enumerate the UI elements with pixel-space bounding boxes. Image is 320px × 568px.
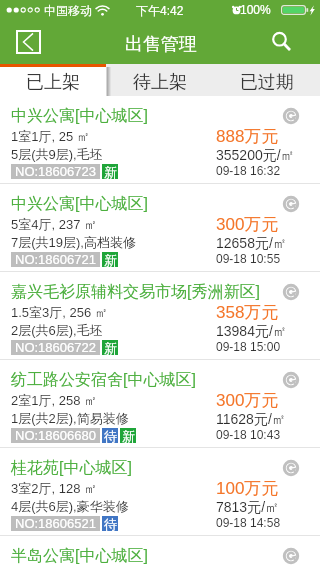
staticText: 09-18 14:58 (216, 516, 281, 529)
button[interactable]: Refresh (283, 196, 299, 212)
staticText: NO:18606721 (15, 252, 96, 267)
staticText: 358万元 (216, 302, 279, 323)
staticText: 中兴公寓[中心城区] (11, 106, 148, 126)
staticText: 新 (122, 428, 135, 443)
button[interactable]: Refresh (283, 372, 299, 388)
staticText: 09-18 15:00 (216, 340, 281, 353)
staticText: NO:18606680 (15, 428, 96, 443)
staticText: 888万元 (216, 126, 279, 147)
button[interactable]: 嘉兴毛衫原辅料交易市场[秀洲新区] (0, 272, 320, 359)
button[interactable]: Refresh (283, 284, 299, 300)
staticText: 12658元/㎡ (216, 235, 287, 253)
button[interactable]: 中兴公寓[中心城区] (0, 96, 320, 183)
button[interactable]: Back (16, 30, 41, 54)
staticText: 300万元 (216, 214, 279, 235)
button[interactable]: 半岛公寓[中心城区] (0, 536, 320, 568)
button[interactable]: Refresh (283, 460, 299, 476)
staticText: 2层(共6层),毛坯 (11, 322, 103, 338)
staticText: NO:18606521 (15, 516, 96, 531)
staticText: 中国移动 (44, 3, 92, 18)
staticText: 新 (104, 340, 117, 355)
staticText: 3室2厅, 128 ㎡ (11, 480, 97, 496)
staticText: NO:18606723 (15, 164, 96, 179)
staticText: 半岛公寓[中心城区] (11, 546, 148, 566)
staticText: 300万元 (216, 390, 279, 411)
staticText: 待 (104, 516, 117, 531)
staticText: 待上架 (133, 71, 187, 94)
staticText: 09-18 10:43 (216, 428, 281, 441)
staticText: 11628元/㎡ (216, 411, 286, 429)
staticText: 待 (104, 428, 117, 443)
staticText: 1室1厅, 25 ㎡ (11, 128, 90, 144)
button[interactable]: 纺工路公安宿舍[中心城区] (0, 360, 320, 447)
staticText: 09-18 10:55 (216, 252, 281, 265)
button[interactable]: 待上架 (106, 64, 213, 96)
staticText: 新 (104, 164, 117, 179)
staticText: 100% (240, 3, 271, 16)
staticText: 嘉兴毛衫原辅料交易市场[秀洲新区] (11, 282, 260, 302)
button[interactable]: Search (266, 26, 294, 54)
staticText: 纺工路公安宿舍[中心城区] (11, 370, 196, 390)
staticText: 5室4厅, 237 ㎡ (11, 216, 97, 232)
staticText: 1.5室3厅, 256 ㎡ (11, 304, 108, 320)
staticText: 新 (104, 252, 117, 267)
staticText: 09-18 16:32 (216, 164, 281, 177)
button[interactable]: Refresh (283, 108, 299, 124)
button[interactable]: 桂花苑[中心城区] (0, 448, 320, 535)
staticText: NO:18606722 (15, 340, 96, 355)
staticText: 已上架 (26, 71, 80, 94)
staticText: 2室1厅, 258 ㎡ (11, 392, 97, 408)
button[interactable]: 中兴公寓[中心城区] (0, 184, 320, 271)
staticText: 100万元 (216, 478, 279, 499)
staticText: 中兴公寓[中心城区] (11, 194, 148, 214)
staticText: 355200元/㎡ (216, 147, 295, 165)
staticText: 已过期 (240, 71, 294, 94)
staticText: 出售管理 (125, 33, 197, 56)
staticText: 1层(共2层),简易装修 (11, 410, 129, 426)
button[interactable]: 已上架 (0, 64, 106, 96)
staticText: 4层(共6层),豪华装修 (11, 498, 129, 514)
staticText: 7813元/㎡ (216, 499, 280, 517)
staticText: 下午4:42 (136, 3, 184, 18)
staticText: 5层(共9层),毛坯 (11, 146, 103, 162)
staticText: 13984元/㎡ (216, 323, 287, 341)
staticText: 7层(共19层),高档装修 (11, 234, 136, 250)
button[interactable]: Refresh (283, 548, 299, 564)
staticText: 桂花苑[中心城区] (11, 458, 132, 478)
button[interactable]: 已过期 (213, 64, 320, 96)
